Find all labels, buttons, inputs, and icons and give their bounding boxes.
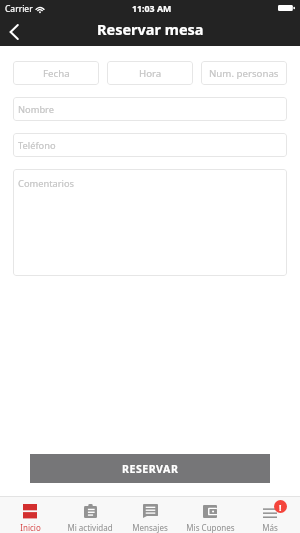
button[interactable]: Mi actividad <box>60 504 120 533</box>
staticText: Teléfono <box>18 139 56 152</box>
button[interactable]: Inicio <box>0 504 60 533</box>
staticText: Reservar mesa <box>97 19 204 39</box>
staticText: Más <box>262 522 278 533</box>
button[interactable]: ! <box>240 504 300 533</box>
button[interactable]: Nombre <box>13 97 287 121</box>
button[interactable]: Teléfono <box>13 133 287 157</box>
staticText: Nombre <box>18 103 54 116</box>
staticText: ! <box>279 501 282 513</box>
staticText: Mensajes <box>132 522 168 533</box>
button[interactable]: Comentarios <box>13 169 287 276</box>
button[interactable]: Mensajes <box>120 504 180 533</box>
staticText: Comentarios <box>18 177 75 190</box>
staticText: 11:03 AM <box>132 3 172 15</box>
button[interactable]: RESERVAR <box>30 454 270 483</box>
staticText: Num. personas <box>209 67 279 80</box>
button[interactable]: Mis Cupones <box>180 504 240 533</box>
button[interactable]: Num. personas <box>201 61 287 85</box>
button[interactable]: Fecha <box>13 61 99 85</box>
staticText: Inicio <box>20 522 41 533</box>
staticText: Hora <box>139 67 162 80</box>
staticText: Mi actividad <box>67 522 113 533</box>
staticText: Mis Cupones <box>186 522 235 533</box>
staticText: Fecha <box>43 67 70 80</box>
staticText: Carrier <box>5 3 33 15</box>
staticText: RESERVAR <box>122 462 179 476</box>
button[interactable]: Back <box>0 18 28 46</box>
button[interactable]: Hora <box>107 61 193 85</box>
